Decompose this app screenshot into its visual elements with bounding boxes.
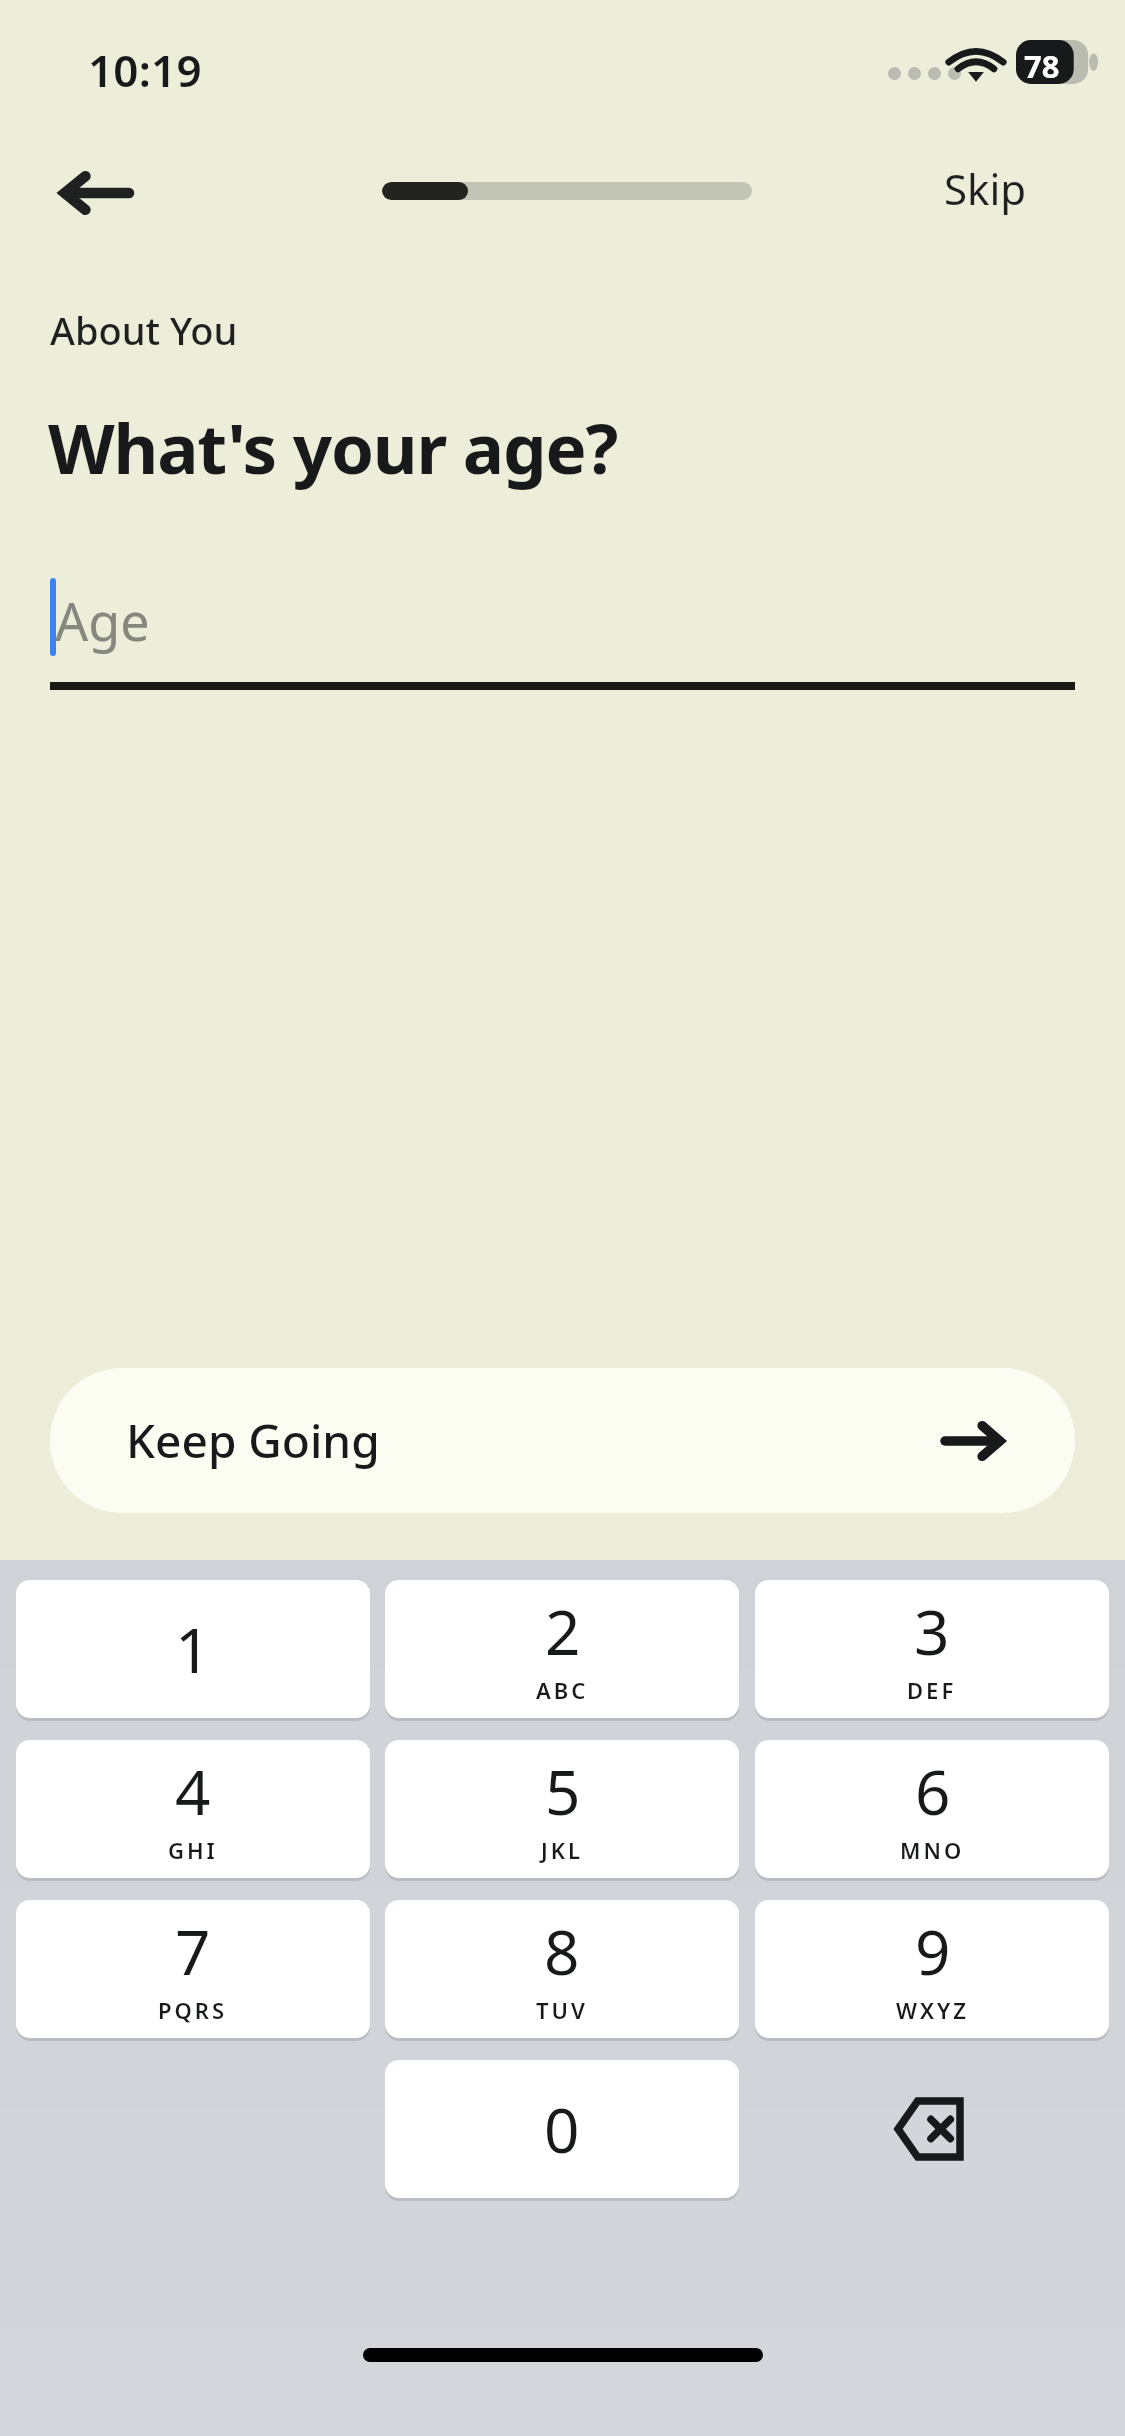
- staticText: 3: [914, 1589, 950, 1673]
- staticText: MNO: [900, 1835, 965, 1865]
- staticText: 0: [544, 2087, 580, 2171]
- staticText: TUV: [536, 1995, 588, 2025]
- staticText: 5: [545, 1749, 581, 1833]
- staticText: Skip: [944, 160, 1027, 217]
- staticText: 78: [1024, 45, 1060, 87]
- staticText: 9: [915, 1909, 951, 1993]
- button[interactable]: Back: [50, 150, 140, 236]
- button[interactable]: 9: [755, 1900, 1109, 2038]
- staticText: 7: [175, 1909, 211, 1993]
- button[interactable]: 6: [755, 1740, 1109, 1878]
- staticText: What's your age?: [48, 400, 618, 494]
- staticText: Keep Going: [126, 1409, 380, 1472]
- button[interactable]: 4: [16, 1740, 370, 1878]
- button[interactable]: Keep Going: [50, 1368, 1075, 1513]
- staticText: JKL: [541, 1835, 584, 1865]
- staticText: 4: [175, 1749, 211, 1833]
- button[interactable]: 3: [755, 1580, 1109, 1718]
- staticText: 10:19: [88, 40, 202, 100]
- button[interactable]: Delete: [755, 2060, 1109, 2198]
- button[interactable]: 8: [385, 1900, 739, 2038]
- staticText: PQRS: [158, 1995, 228, 2025]
- staticText: 2: [545, 1589, 581, 1673]
- staticText: Age: [55, 585, 150, 656]
- staticText: About You: [50, 304, 238, 356]
- button[interactable]: Skip: [930, 148, 1041, 229]
- button[interactable]: 7: [16, 1900, 370, 2038]
- button[interactable]: 5: [385, 1740, 739, 1878]
- staticText: 8: [544, 1909, 580, 1993]
- staticText: GHI: [168, 1835, 218, 1865]
- staticText: WXYZ: [896, 1995, 969, 2025]
- staticText: ABC: [536, 1675, 589, 1705]
- button[interactable]: 0: [385, 2060, 739, 2198]
- staticText: 6: [915, 1749, 951, 1833]
- button[interactable]: 2: [385, 1580, 739, 1718]
- button[interactable]: Age: [50, 560, 1075, 720]
- button[interactable]: 1: [16, 1580, 370, 1718]
- staticText: DEF: [907, 1675, 957, 1705]
- staticText: 1: [175, 1607, 211, 1691]
